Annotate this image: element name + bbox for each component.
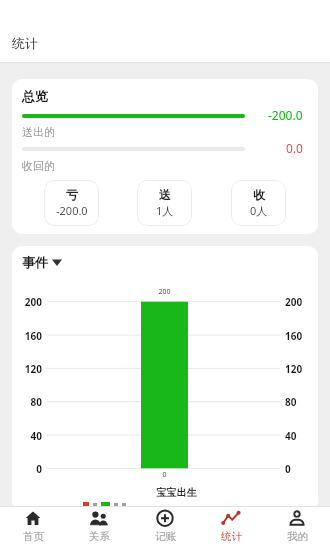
staticText: 统计 [12,35,38,51]
staticText: 收 [253,187,265,202]
staticText: 160 [12,329,42,343]
staticText: 160 [285,329,303,343]
staticText: 0 [141,470,188,480]
staticText: 统计 [221,530,242,543]
staticText: 0 [285,462,291,476]
staticText: 0.0 [286,140,303,156]
staticText: 120 [285,362,303,376]
staticText: -200.0 [268,107,303,123]
button[interactable]: 记账 [132,506,198,550]
staticText: 总览 [22,88,48,104]
button[interactable]: 我的 [264,506,330,550]
staticText: 记账 [155,530,176,543]
staticText: 首页 [23,530,44,543]
button[interactable]: 亏 [44,180,99,226]
staticText: 送出的 [22,125,55,139]
button[interactable]: 事件 [22,254,62,270]
button[interactable]: 首页 [0,506,66,550]
staticText: 120 [12,362,42,376]
staticText: 80 [285,395,297,409]
button[interactable]: 关系 [66,506,132,550]
staticText: 40 [285,429,297,443]
button[interactable]: 统计 [198,506,264,550]
staticText: 送 [159,187,171,202]
staticText: 200 [141,287,188,297]
staticText: 宝宝出生 [116,486,237,499]
staticText: 我的 [287,530,308,543]
staticText: -200.0 [56,203,88,218]
button[interactable]: 收 [231,180,286,226]
staticText: 40 [12,429,42,443]
button[interactable]: 送 [137,180,192,226]
staticText: 200 [12,295,42,309]
staticText: 关系 [89,530,110,543]
staticText: 0 [12,462,42,476]
staticText: 200 [285,295,303,309]
staticText: 80 [12,395,42,409]
staticText: 1人 [156,203,174,218]
staticText: 0人 [250,203,268,218]
staticText: 事件 [22,254,48,270]
staticText: 亏 [66,187,78,202]
staticText: 收回的 [22,159,55,173]
